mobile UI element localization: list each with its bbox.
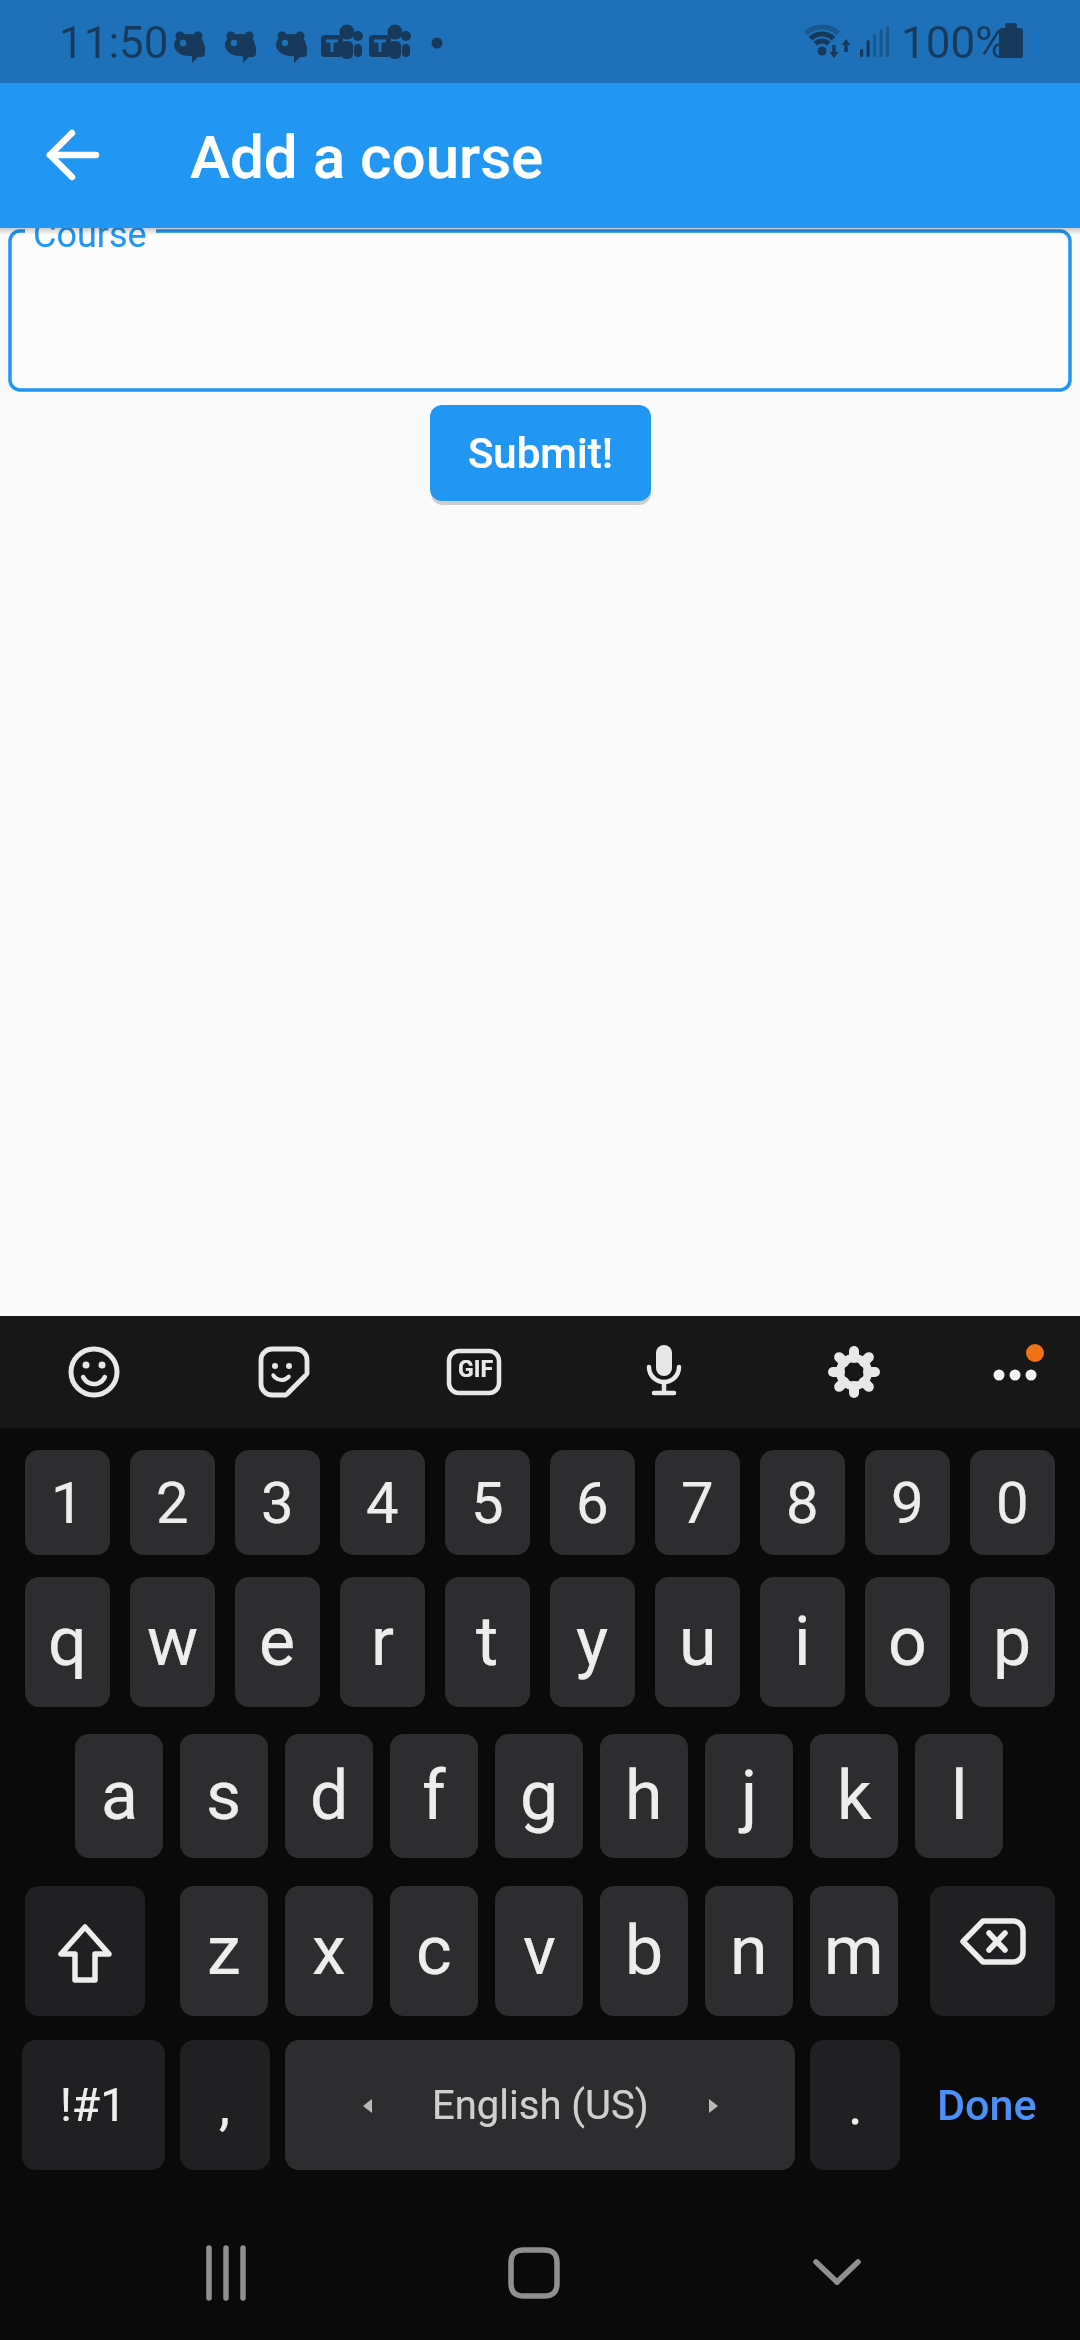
- staticText: Course: [33, 228, 147, 256]
- button[interactable]: English (US): [285, 2040, 795, 2170]
- staticText: i: [794, 1602, 811, 1682]
- staticText: s: [206, 1756, 242, 1836]
- staticText: x: [312, 1911, 346, 1991]
- staticText: 100%: [901, 17, 1008, 69]
- button[interactable]: [785, 2220, 889, 2324]
- button[interactable]: h: [600, 1734, 688, 1858]
- staticText: b: [625, 1911, 664, 1991]
- button[interactable]: o: [865, 1577, 950, 1707]
- button[interactable]: 7: [655, 1450, 740, 1555]
- button[interactable]: s: [180, 1734, 268, 1858]
- staticText: !#1: [60, 2078, 127, 2132]
- staticText: c: [416, 1911, 452, 1991]
- staticText: 9: [891, 1469, 924, 1537]
- button[interactable]: 9: [865, 1450, 950, 1555]
- button[interactable]: [8, 229, 1072, 392]
- staticText: 2: [156, 1469, 189, 1537]
- button[interactable]: b: [600, 1886, 688, 2016]
- button[interactable]: ,: [180, 2040, 270, 2170]
- button[interactable]: v: [495, 1886, 583, 2016]
- button[interactable]: Submit!: [430, 405, 651, 501]
- staticText: v: [523, 1911, 556, 1991]
- staticText: q: [48, 1602, 87, 1682]
- button[interactable]: k: [810, 1734, 898, 1858]
- staticText: m: [824, 1911, 884, 1991]
- staticText: 4: [366, 1469, 399, 1537]
- staticText: 11:50: [59, 17, 169, 69]
- button[interactable]: [930, 1886, 1055, 2016]
- button[interactable]: r: [340, 1577, 425, 1707]
- button[interactable]: n: [705, 1886, 793, 2016]
- staticText: 6: [576, 1469, 609, 1537]
- staticText: r: [371, 1602, 395, 1682]
- button[interactable]: 6: [550, 1450, 635, 1555]
- button[interactable]: q: [25, 1577, 110, 1707]
- button[interactable]: [25, 1886, 145, 2016]
- staticText: d: [310, 1756, 349, 1836]
- button[interactable]: .: [810, 2040, 900, 2170]
- button[interactable]: !#1: [22, 2040, 165, 2170]
- button[interactable]: y: [550, 1577, 635, 1707]
- button[interactable]: 5: [445, 1450, 530, 1555]
- button[interactable]: d: [285, 1734, 373, 1858]
- button[interactable]: j: [705, 1734, 793, 1858]
- button[interactable]: 1: [25, 1450, 110, 1555]
- staticText: p: [993, 1602, 1032, 1682]
- button[interactable]: z: [180, 1886, 268, 2016]
- button[interactable]: p: [970, 1577, 1055, 1707]
- staticText: y: [576, 1602, 609, 1682]
- staticText: z: [207, 1911, 241, 1991]
- button[interactable]: 0: [970, 1450, 1055, 1555]
- button[interactable]: l: [915, 1734, 1003, 1858]
- staticText: w: [147, 1602, 199, 1682]
- button[interactable]: g: [495, 1734, 583, 1858]
- staticText: l: [951, 1756, 968, 1836]
- staticText: Add a course: [190, 122, 544, 192]
- staticText: e: [259, 1602, 296, 1682]
- button[interactable]: t: [445, 1577, 530, 1707]
- staticText: u: [679, 1602, 717, 1682]
- staticText: English (US): [432, 2082, 649, 2129]
- button[interactable]: f: [390, 1734, 478, 1858]
- button[interactable]: 8: [760, 1450, 845, 1555]
- staticText: k: [837, 1756, 872, 1836]
- button[interactable]: i: [760, 1577, 845, 1707]
- button[interactable]: 2: [130, 1450, 215, 1555]
- staticText: j: [741, 1756, 758, 1836]
- staticText: o: [888, 1602, 927, 1682]
- staticText: 7: [681, 1469, 714, 1537]
- button[interactable]: 3: [235, 1450, 320, 1555]
- button[interactable]: u: [655, 1577, 740, 1707]
- staticText: a: [101, 1756, 138, 1836]
- staticText: g: [520, 1756, 559, 1836]
- staticText: 8: [786, 1469, 819, 1537]
- staticText: Done: [937, 2080, 1037, 2130]
- staticText: f: [422, 1756, 446, 1836]
- staticText: 0: [996, 1469, 1029, 1537]
- button[interactable]: m: [810, 1886, 898, 2016]
- staticText: t: [476, 1602, 499, 1682]
- staticText: n: [730, 1911, 768, 1991]
- button[interactable]: [30, 112, 116, 198]
- button[interactable]: Done: [915, 2040, 1058, 2170]
- staticText: 5: [471, 1469, 504, 1537]
- button[interactable]: [482, 2220, 586, 2324]
- staticText: ,: [219, 2072, 231, 2138]
- button[interactable]: c: [390, 1886, 478, 2016]
- staticText: GIF: [458, 1356, 493, 1383]
- staticText: 3: [261, 1469, 294, 1537]
- button[interactable]: 4: [340, 1450, 425, 1555]
- staticText: 1: [51, 1469, 84, 1537]
- button[interactable]: e: [235, 1577, 320, 1707]
- staticText: Submit!: [468, 429, 613, 478]
- button[interactable]: x: [285, 1886, 373, 2016]
- button[interactable]: w: [130, 1577, 215, 1707]
- button[interactable]: [180, 2220, 284, 2324]
- staticText: h: [625, 1756, 663, 1836]
- button[interactable]: a: [75, 1734, 163, 1858]
- staticText: .: [848, 2072, 863, 2138]
